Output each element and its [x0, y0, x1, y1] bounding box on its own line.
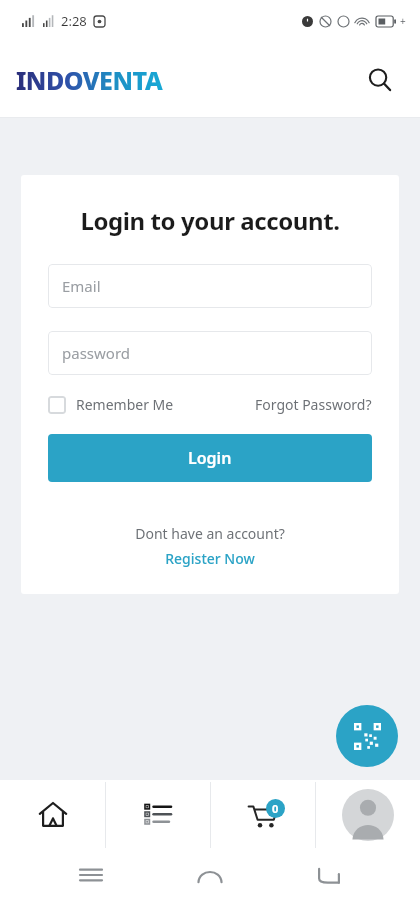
- button[interactable]: password: [48, 331, 372, 375]
- button[interactable]: Search: [358, 58, 402, 102]
- staticText: 0: [272, 801, 279, 816]
- button[interactable]: Login: [48, 434, 372, 482]
- button[interactable]: Email: [48, 264, 372, 308]
- staticText: +: [400, 14, 406, 28]
- staticText: password: [62, 343, 130, 363]
- button[interactable]: Back: [308, 854, 350, 896]
- button[interactable]: Register Now: [48, 549, 372, 568]
- button[interactable]: Home: [0, 780, 105, 850]
- staticText: INDOVENTA: [16, 63, 163, 97]
- button[interactable]: Home: [189, 854, 231, 896]
- staticText: Email: [62, 276, 101, 296]
- staticText: Remember Me: [76, 395, 174, 414]
- button[interactable]: Profile: [316, 780, 420, 850]
- button[interactable]: Forgot Password?: [255, 395, 372, 414]
- staticText: Forgot Password?: [255, 395, 372, 414]
- staticText: 2:28: [61, 12, 87, 30]
- button[interactable]: INDOVENTA home: [16, 63, 163, 97]
- button[interactable]: Scan QR code: [336, 705, 398, 767]
- button[interactable]: Orders: [106, 780, 210, 850]
- button[interactable]: Remember Me: [48, 395, 174, 414]
- staticText: Login: [188, 447, 232, 469]
- staticText: Register Now: [165, 549, 255, 568]
- button[interactable]: Recent apps: [70, 854, 112, 896]
- button[interactable]: Cart, 0 items: [211, 780, 315, 850]
- staticText: Login to your account.: [48, 204, 372, 237]
- staticText: Dont have an account?: [48, 524, 372, 543]
